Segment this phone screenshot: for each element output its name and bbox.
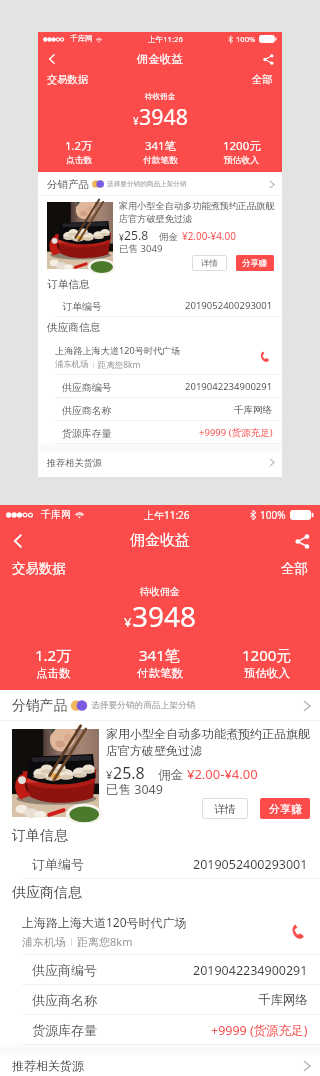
button[interactable]: 订单编号 [38, 294, 282, 317]
staticText: 1.2万 [65, 138, 93, 154]
staticText: 25.8 [124, 227, 149, 244]
button[interactable]: 1200元 [213, 645, 320, 680]
staticText: 待收佣金 [38, 92, 282, 102]
staticText: ¥2.00-¥4.00 [182, 229, 236, 243]
staticText: 千库网 [41, 508, 71, 521]
staticText: 点击数 [66, 155, 93, 166]
staticText: 上午11:26 [148, 34, 183, 44]
button[interactable]: 供应商编号 [38, 375, 282, 398]
button[interactable]: 上海路上海大道120号时代广场 [38, 338, 282, 375]
button[interactable]: Call supplier [256, 348, 273, 365]
button[interactable]: Share [258, 49, 278, 69]
staticText: 详情 [201, 258, 218, 269]
staticText: 家用小型全自动多功能煮预约正品旗舰店官方破壁免过滤 [106, 726, 314, 759]
staticText: 家用小型全自动多功能煮预约正品旗舰店官方破壁免过滤 [119, 200, 278, 225]
staticText: 预估收入 [224, 155, 260, 166]
staticText: 订单信息 [47, 278, 90, 291]
staticText: 订单编号 [32, 856, 84, 872]
staticText: 交易数据 [47, 73, 89, 86]
staticText: 1.2万 [35, 645, 72, 665]
button[interactable]: 1.2万 [0, 645, 106, 680]
staticText: 分销产品 [47, 178, 90, 191]
button[interactable]: 全部 [252, 73, 273, 86]
staticText: 全部 [281, 560, 308, 577]
staticText: 3948 [132, 597, 197, 635]
staticText: 分销产品 [12, 697, 68, 714]
staticText: 2019042234900291 [185, 380, 273, 393]
button[interactable]: 货源库存量 [0, 1015, 320, 1045]
staticText: 订单信息 [12, 827, 68, 845]
button[interactable]: 上海路上海大道120号时代广场 [0, 907, 320, 955]
staticText: 点击数 [36, 666, 71, 680]
staticText: 距离您8km [98, 359, 141, 370]
staticText: 上海路上海大道120号时代广场 [55, 344, 181, 356]
button[interactable]: 家用小型全自动多功能煮预约正品旗舰店官方破壁免过滤 [0, 721, 320, 823]
button[interactable]: 分享赚 [260, 798, 310, 819]
staticText: 供应商编号 [32, 962, 97, 978]
staticText: 341笔 [139, 645, 180, 665]
staticText: 100% [260, 508, 286, 522]
staticText: 订单编号 [62, 300, 102, 312]
staticText: 选择要分销的商品上架分销 [107, 180, 187, 188]
button[interactable]: 分销产品 [0, 690, 320, 721]
staticText: 分享赚 [269, 802, 302, 816]
button[interactable]: Back [5, 528, 31, 554]
button[interactable]: 交易数据 [47, 73, 89, 86]
button[interactable]: 分销产品 [38, 172, 282, 196]
button[interactable]: 推荐相关货源 [38, 452, 282, 473]
button[interactable]: 家用小型全自动多功能煮预约正品旗舰店官方破壁免过滤 [38, 196, 282, 274]
staticText: 货源库存量 [32, 1022, 97, 1038]
staticText: 2019042234900291 [193, 962, 308, 979]
staticText: 供应商编号 [62, 381, 112, 393]
staticText: +9999 (货源充足) [211, 1022, 308, 1039]
staticText: 浦东机场 [55, 359, 89, 370]
staticText: 浦东机场 [22, 935, 66, 949]
button[interactable]: 详情 [202, 798, 248, 819]
staticText: 2019052400293001 [193, 856, 308, 873]
button[interactable]: 推荐相关货源 [0, 1055, 320, 1076]
staticText: 上海路上海大道120号时代广场 [22, 914, 187, 930]
staticText: 佣金 [159, 231, 179, 243]
staticText: 供应商名称 [32, 992, 97, 1008]
button[interactable]: 341笔 [120, 138, 201, 166]
button[interactable]: 供应商编号 [0, 955, 320, 985]
staticText: ¥ [133, 114, 139, 128]
staticText: ¥ [124, 613, 132, 631]
button[interactable]: Call supplier [286, 920, 308, 942]
staticText: 上午11:26 [144, 508, 190, 522]
button[interactable]: 1.2万 [38, 138, 120, 166]
button[interactable]: 供应商名称 [38, 398, 282, 421]
staticText: 供应商信息 [12, 884, 82, 902]
staticText: 佣金收益 [130, 531, 190, 550]
staticText: 供应商名称 [62, 404, 112, 416]
staticText: 1200元 [223, 138, 261, 154]
staticText: 预估收入 [244, 666, 290, 680]
staticText: 25.8 [113, 762, 145, 784]
button[interactable]: 详情 [192, 255, 227, 271]
staticText: 分享赚 [242, 258, 268, 269]
staticText: 已售 3049 [106, 781, 163, 798]
staticText: 推荐相关货源 [12, 1058, 84, 1073]
button[interactable]: 341笔 [106, 645, 213, 680]
button[interactable]: 订单编号 [0, 849, 320, 879]
button[interactable]: Share [289, 528, 315, 554]
button[interactable]: 分享赚 [236, 255, 274, 271]
staticText: 货源库存量 [62, 427, 112, 439]
button[interactable]: 货源库存量 [38, 421, 282, 444]
button[interactable]: 交易数据 [12, 560, 66, 577]
button[interactable]: 1200元 [201, 138, 282, 166]
staticText: 千库网 [70, 34, 93, 44]
staticText: +9999 (货源充足) [199, 426, 273, 439]
staticText: 341笔 [145, 138, 177, 154]
staticText: 全部 [252, 73, 273, 86]
staticText: ¥2.00-¥4.00 [187, 765, 258, 783]
staticText: 付款笔数 [143, 155, 179, 166]
button[interactable]: Back [42, 49, 62, 69]
staticText: 距离您8km [77, 934, 133, 949]
staticText: 佣金收益 [137, 52, 183, 66]
button[interactable]: 供应商名称 [0, 985, 320, 1015]
staticText: 千库网络 [258, 992, 308, 1008]
staticText: 已售 3049 [119, 242, 163, 255]
staticText: 付款笔数 [137, 666, 183, 680]
button[interactable]: 全部 [281, 560, 308, 577]
